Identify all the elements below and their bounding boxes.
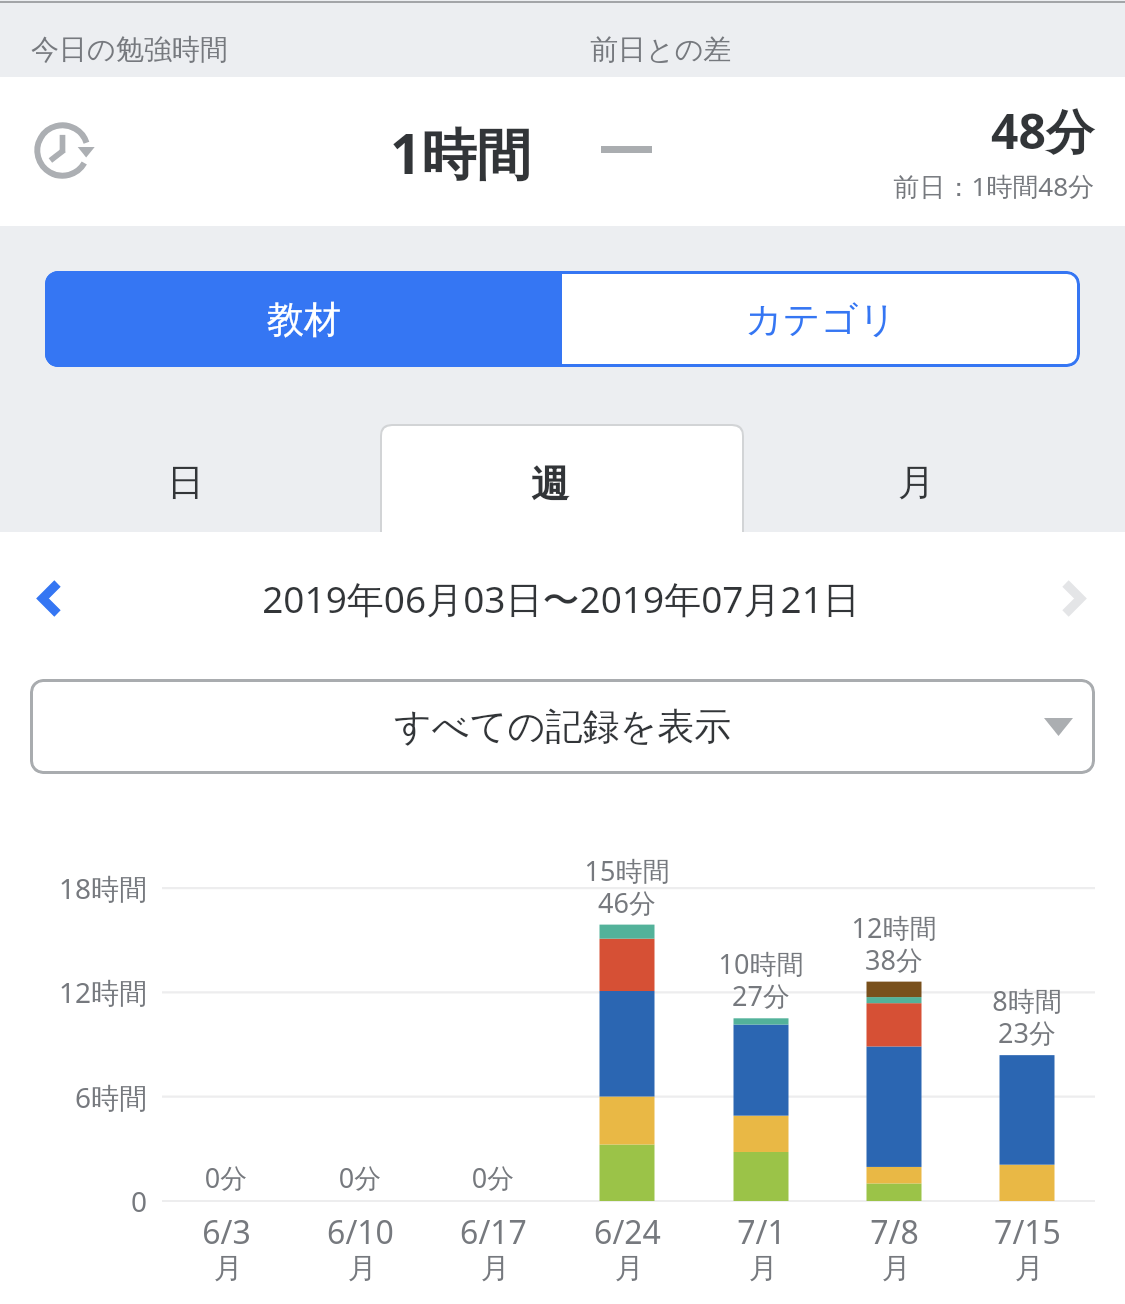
staticText: 0分 [126,1159,326,1196]
staticText: すべての記録を表示 [394,703,732,750]
staticText: 12時間 [0,973,147,1011]
staticText: 0分 [393,1159,593,1196]
staticText: 月 [1015,1250,1044,1287]
button[interactable]: 週 [380,424,744,534]
staticText: 今日の勉強時間 [31,32,228,67]
staticText: 6/10 [327,1210,394,1254]
button[interactable]: 教材 [45,271,562,367]
staticText: 6/17 [460,1210,527,1254]
staticText: 月 [882,1250,911,1287]
staticText: 8時間 23分 [927,982,1125,1051]
button[interactable]: Study history [31,119,94,182]
staticText: 48分 [991,98,1094,164]
staticText: 前日：1時間48分 [893,168,1094,204]
button[interactable]: 日 [0,367,380,532]
staticText: 週 [531,460,569,508]
staticText: 15時間 46分 [527,852,727,921]
button[interactable]: すべての記録を表示 [30,679,1095,774]
staticText: 10時間 27分 [661,945,861,1014]
staticText: 1時間 [390,115,532,190]
button[interactable]: カテゴリ [562,271,1080,367]
staticText: 月 [615,1250,644,1287]
staticText: 7/15 [994,1210,1061,1254]
staticText: 前日との差 [590,32,732,67]
staticText: 12時間 38分 [794,909,994,978]
staticText: 2019年06月03日〜2019年07月21日 [0,573,1122,624]
staticText: 6時間 [0,1078,147,1116]
button[interactable]: 月 [744,367,1125,532]
staticText: 日 [167,459,204,506]
staticText: 月 [214,1250,243,1287]
staticText: 6/3 [202,1210,251,1254]
staticText: 月 [749,1250,778,1287]
staticText: カテゴリ [745,296,897,343]
staticText: 教材 [267,296,341,343]
staticText: 月 [898,459,935,506]
staticText: 0 [0,1182,147,1220]
staticText: 0分 [260,1159,460,1196]
staticText: 月 [348,1250,377,1287]
button[interactable]: Previous period [18,566,82,630]
staticText: 18時間 [0,869,147,907]
staticText: 7/1 [737,1210,786,1254]
staticText: 7/8 [870,1210,919,1254]
staticText: 月 [481,1250,510,1287]
button[interactable]: Next period [1041,566,1105,630]
staticText: 6/24 [594,1210,661,1254]
